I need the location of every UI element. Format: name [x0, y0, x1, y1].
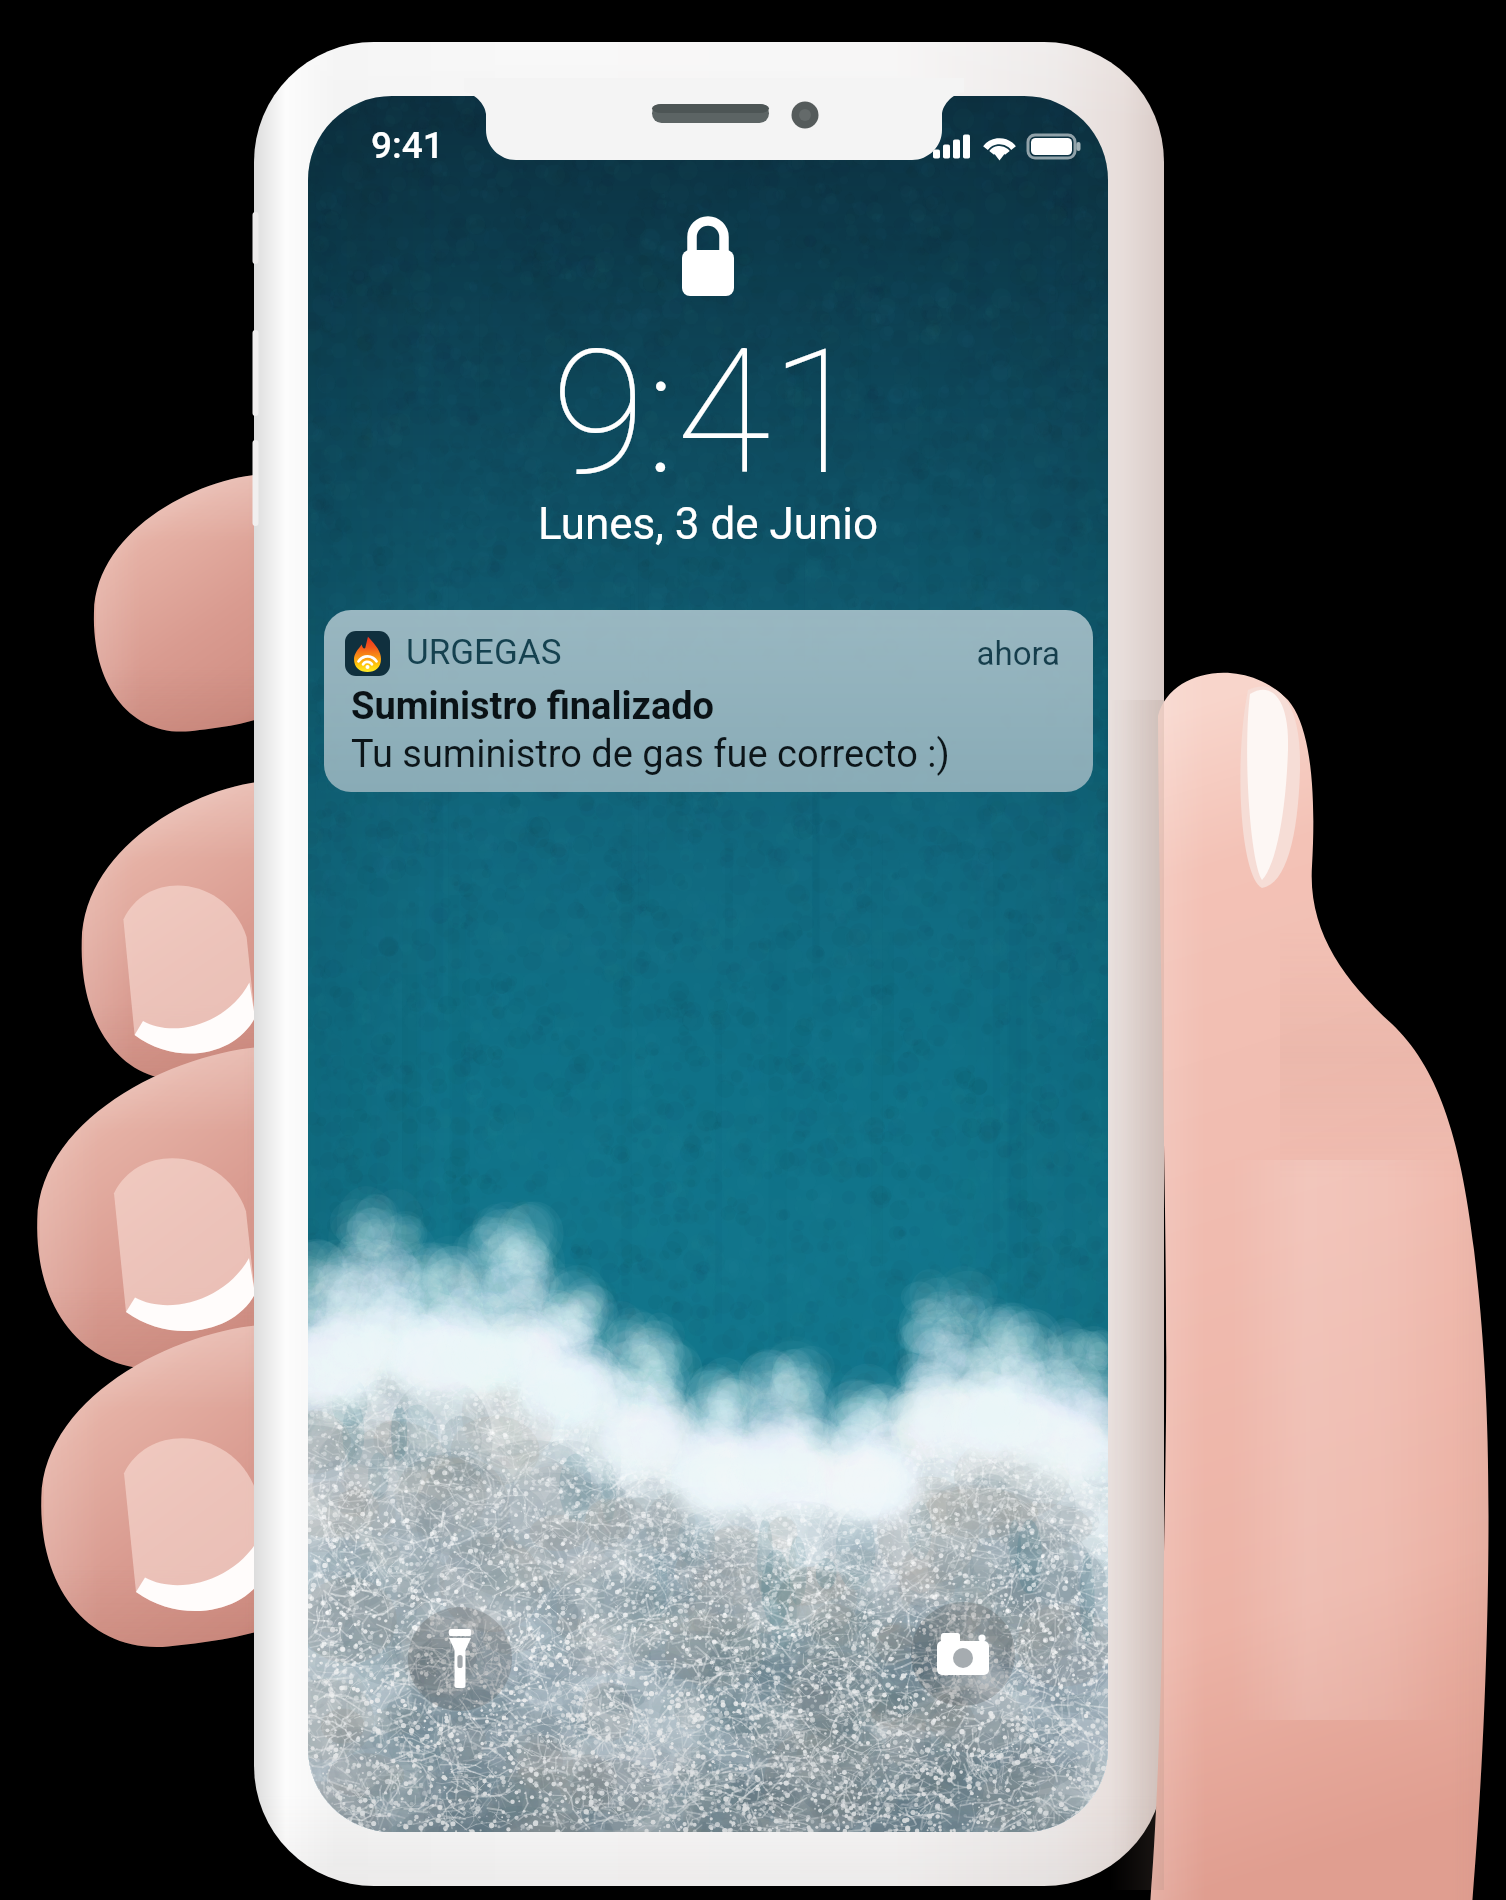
staticText: 9:41	[371, 124, 444, 167]
button[interactable]: Linterna	[408, 1607, 512, 1711]
staticText: Tu suministro de gas fue correcto :)	[351, 732, 950, 777]
staticText: ahora	[810, 634, 1060, 673]
button[interactable]: Notificación URGEGAS: Suministro finaliz…	[324, 610, 1093, 792]
staticText: URGEGAS	[406, 632, 562, 673]
button[interactable]: Cámara	[911, 1602, 1015, 1706]
staticText: Suministro finalizado	[351, 684, 715, 729]
staticText: 9:41	[458, 312, 958, 514]
staticText: Lunes, 3 de Junio	[408, 498, 1008, 550]
